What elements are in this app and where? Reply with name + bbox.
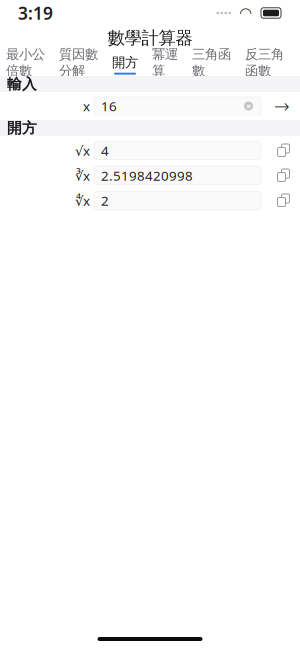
staticText: 三角函數 — [192, 46, 231, 79]
button[interactable]: 冪運算 — [152, 43, 178, 83]
staticText: 反三角函數 — [245, 46, 284, 79]
button[interactable]: 16 — [94, 97, 261, 115]
button[interactable]: 最小公倍數 — [6, 43, 45, 83]
staticText: 最小公倍數 — [6, 46, 45, 79]
staticText: 4 — [101, 142, 109, 159]
button[interactable]: 質因數分解 — [59, 43, 98, 83]
staticText: ∜x — [75, 192, 90, 209]
button[interactable]: 三角函數 — [192, 43, 231, 83]
button[interactable]: Copy 4 — [270, 139, 296, 161]
staticText: 數學計算器 — [107, 27, 192, 49]
staticText: 16 — [101, 97, 117, 115]
button[interactable]: Calculate — [270, 95, 294, 117]
button[interactable]: 開方 — [112, 51, 138, 75]
staticText: 輸入 — [7, 75, 37, 93]
button[interactable]: Copy 2 — [270, 189, 296, 211]
staticText: 冪運算 — [152, 46, 178, 79]
staticText: ◠ — [240, 5, 251, 21]
staticText: √x — [75, 142, 90, 159]
staticText: x — [83, 97, 90, 115]
staticText: 開方 — [7, 119, 37, 137]
staticText: 2.5198420998 — [101, 167, 193, 184]
staticText: 2 — [101, 192, 109, 209]
staticText: 質因數分解 — [59, 46, 98, 79]
staticText: × — [246, 100, 251, 112]
staticText: 3:19 — [18, 1, 53, 24]
staticText: → — [274, 95, 290, 117]
button[interactable]: 反三角函數 — [245, 43, 284, 83]
button[interactable]: Copy 2.5198420998 — [270, 164, 296, 186]
staticText: ∛x — [75, 167, 90, 184]
staticText: 開方 — [112, 54, 138, 71]
